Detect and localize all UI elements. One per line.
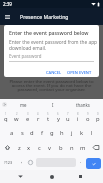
staticText: 7 — [67, 112, 69, 116]
button[interactable]: Close keyboard — [13, 170, 28, 183]
button[interactable]: 1 — [0, 110, 11, 125]
button[interactable]: m — [77, 140, 88, 155]
button[interactable]: me — [9, 99, 38, 110]
button[interactable]: c — [34, 140, 44, 155]
staticText: l — [91, 129, 93, 137]
staticText: i — [77, 115, 79, 123]
button[interactable]: Emoji — [26, 155, 35, 170]
button[interactable]: z — [14, 140, 24, 155]
staticText: o — [86, 115, 90, 123]
staticText: . — [80, 158, 82, 165]
staticText: v — [48, 144, 51, 152]
staticText: 5 — [47, 112, 49, 116]
staticText: w — [14, 115, 19, 123]
staticText: p — [96, 115, 100, 123]
staticText: CANCEL — [46, 70, 62, 75]
staticText: I — [52, 102, 54, 108]
staticText: 0 — [97, 112, 99, 116]
button[interactable]: l — [87, 125, 97, 140]
button[interactable]: 7 — [63, 110, 73, 125]
staticText: OPEN EVENT — [67, 70, 92, 75]
button[interactable]: Recent apps — [73, 170, 88, 183]
staticText: k — [80, 129, 84, 137]
button[interactable]: x — [24, 140, 34, 155]
staticText: 4 — [37, 112, 39, 116]
staticText: n — [70, 144, 74, 152]
button[interactable]: 5 — [43, 110, 53, 125]
staticText: Please enter the event password below to… — [9, 78, 94, 93]
button[interactable]: Open navigation menu — [0, 8, 15, 25]
staticText: d — [30, 129, 34, 137]
staticText: f — [41, 129, 43, 137]
staticText: Event password — [9, 53, 42, 59]
button[interactable]: s — [17, 125, 27, 140]
button[interactable]: 6 — [53, 110, 63, 125]
staticText: z — [18, 144, 21, 152]
button[interactable]: Expand suggestions — [0, 99, 9, 110]
button[interactable]: 3 — [22, 110, 33, 125]
button[interactable]: b — [55, 140, 66, 155]
button[interactable]: f — [37, 125, 47, 140]
button[interactable]: I — [38, 99, 68, 110]
staticText: r — [37, 115, 40, 123]
staticText: s — [21, 129, 24, 137]
button[interactable]: v — [44, 140, 55, 155]
staticText: a — [10, 129, 14, 137]
staticText: j — [71, 129, 73, 137]
staticText: m — [80, 144, 86, 152]
staticText: g — [50, 129, 54, 137]
button[interactable]: k — [77, 125, 87, 140]
staticText: 2:39 — [3, 1, 12, 7]
button[interactable]: CANCEL — [44, 68, 64, 77]
button[interactable]: ?123 — [1, 155, 16, 170]
staticText: 6 — [57, 112, 59, 116]
button[interactable]: 8 — [73, 110, 83, 125]
button[interactable]: 2 — [11, 110, 22, 125]
button[interactable]: j — [67, 125, 77, 140]
button[interactable]: OPEN EVENT — [65, 68, 94, 77]
button[interactable]: h — [57, 125, 67, 140]
button[interactable]: Backspace — [88, 140, 103, 155]
staticText: b — [59, 144, 63, 152]
staticText: Presence Marketing — [20, 13, 69, 20]
button[interactable]: 9 — [83, 110, 93, 125]
button[interactable]: d — [27, 125, 37, 140]
staticText: Enter the event password below — [9, 29, 89, 36]
staticText: 8 — [77, 112, 79, 116]
staticText: 9 — [87, 112, 89, 116]
staticText: thanks — [76, 102, 90, 108]
staticText: h — [60, 129, 64, 137]
staticText: ?123 — [4, 160, 13, 165]
staticText: me — [20, 102, 27, 108]
staticText: c — [38, 144, 41, 152]
staticText: q — [4, 115, 8, 123]
staticText: 2 — [16, 112, 18, 116]
button[interactable]: Enter — [86, 158, 101, 169]
staticText: 3 — [27, 112, 29, 116]
button[interactable]: 4 — [33, 110, 43, 125]
staticText: t — [47, 115, 50, 123]
staticText: y — [57, 115, 60, 123]
staticText: Enter the event password from the app do… — [9, 39, 98, 51]
button[interactable]: g — [47, 125, 57, 140]
staticText: , — [21, 158, 23, 165]
button[interactable]: . — [77, 155, 85, 170]
button[interactable]: Shift — [0, 140, 14, 155]
button[interactable]: a — [6, 125, 17, 140]
button[interactable]: 0 — [93, 110, 103, 125]
staticText: x — [27, 144, 31, 152]
button[interactable]: n — [66, 140, 77, 155]
staticText: e — [26, 115, 30, 123]
staticText: 1 — [5, 112, 7, 116]
button[interactable]: , — [17, 155, 26, 170]
button[interactable]: thanks — [68, 99, 98, 110]
staticText: u — [66, 115, 70, 123]
button[interactable]: Home — [44, 170, 59, 183]
